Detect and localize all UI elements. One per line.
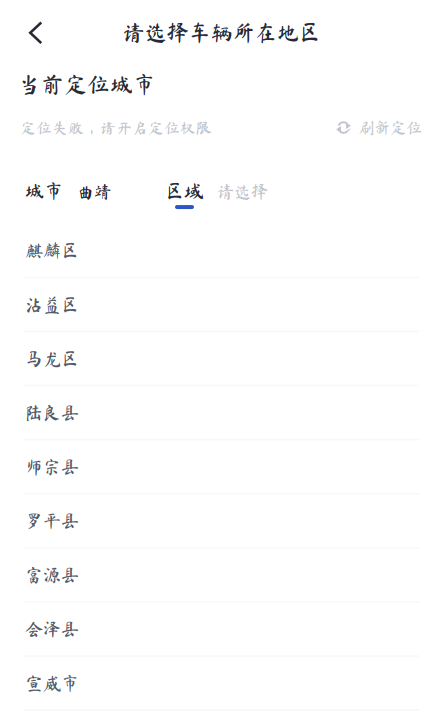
button[interactable]: 城市 [25,180,111,209]
staticText: 请选择车辆所在地区 [122,21,320,44]
button[interactable]: 罗平县 [0,494,443,549]
button[interactable]: 沾益区 [0,278,443,332]
staticText: 罗平县 [25,512,79,530]
button[interactable]: 陆良县 [0,386,443,440]
button[interactable]: 会泽县 [0,603,443,657]
staticText: 区域 [165,181,203,200]
staticText: 定位失败，请开启定位权限 [20,120,212,136]
staticText: 陆良县 [25,404,79,422]
staticText: 沾益区 [25,295,79,313]
staticText: 麒麟区 [25,241,79,259]
button[interactable]: 马龙区 [0,332,443,386]
button[interactable]: Back [14,11,58,55]
button[interactable]: 宣威市 [0,657,443,711]
staticText: 师宗县 [25,458,79,476]
staticText: 城市 [25,181,63,200]
button[interactable]: 区域 [165,180,268,209]
staticText: 宣威市 [25,674,79,692]
button[interactable]: 富源县 [0,549,443,603]
button[interactable]: 刷新定位 [335,119,422,136]
staticText: 会泽县 [25,620,79,638]
staticText: 当前定位城市 [18,73,156,95]
staticText: 马龙区 [25,349,79,367]
button[interactable]: 师宗县 [0,440,443,494]
staticText: 曲靖 [77,183,111,200]
button[interactable]: 麒麟区 [0,224,443,278]
staticText: 请选择 [217,183,268,200]
staticText: 刷新定位 [358,120,422,136]
staticText: 富源县 [25,566,79,584]
